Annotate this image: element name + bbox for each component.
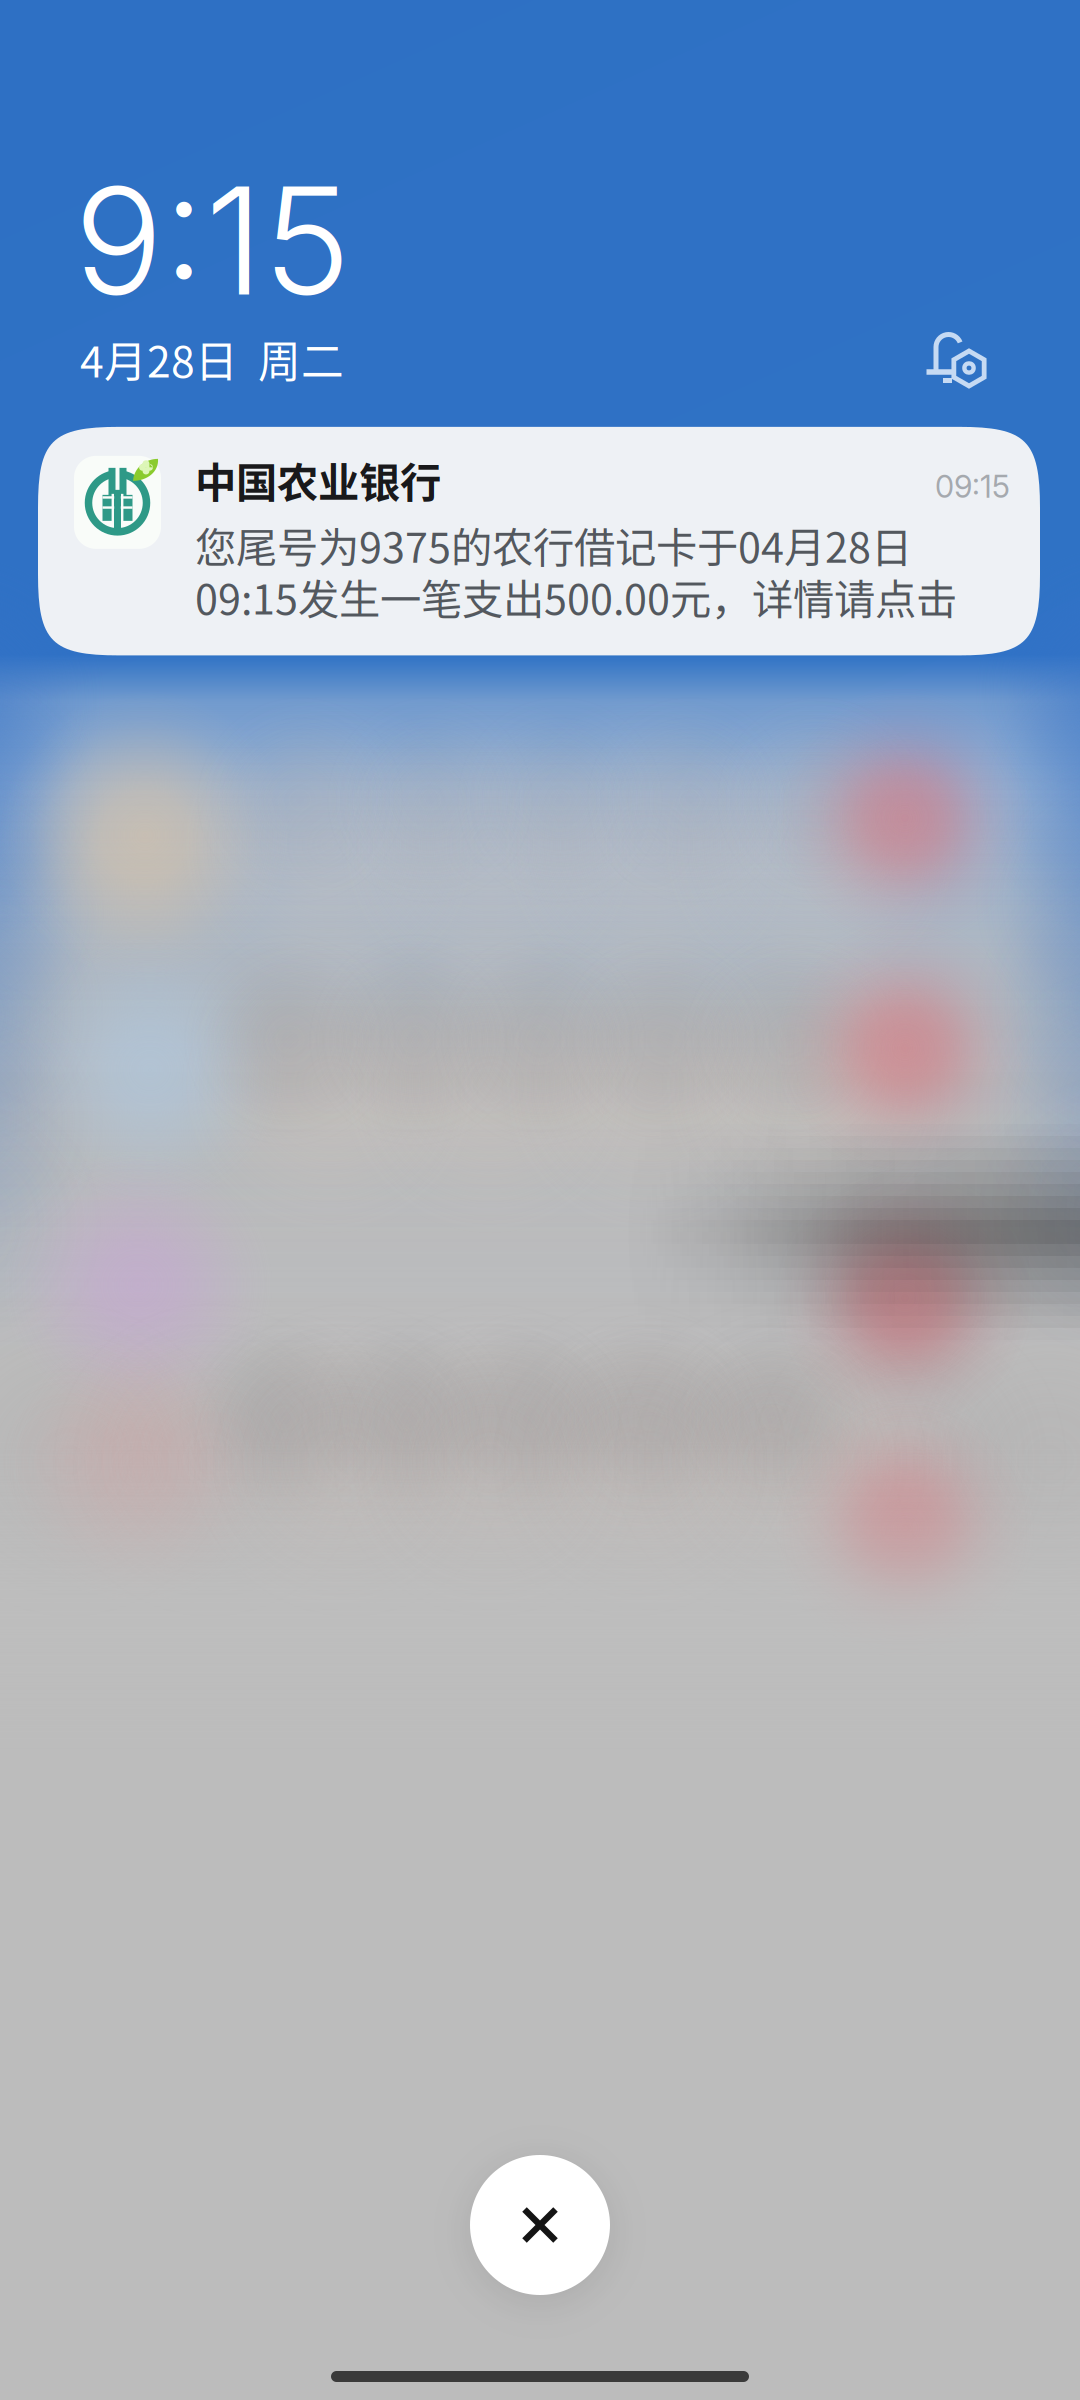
staticText: 您尾号为9375的农行借记卡于04月28日 <box>195 515 912 575</box>
button[interactable]: Notification settings <box>906 307 1006 407</box>
button[interactable]: 中国农业银行 <box>38 427 1040 655</box>
staticText: 09:15 <box>935 468 1010 505</box>
staticText: 09:15发生一笔支出500.00元，详情请点击 <box>195 567 957 626</box>
staticText: 中国农业银行 <box>195 450 441 510</box>
button[interactable]: Close notification <box>470 2155 610 2295</box>
staticText: 4月28日 周二 <box>80 328 344 390</box>
staticText: 9:15 <box>74 151 351 330</box>
